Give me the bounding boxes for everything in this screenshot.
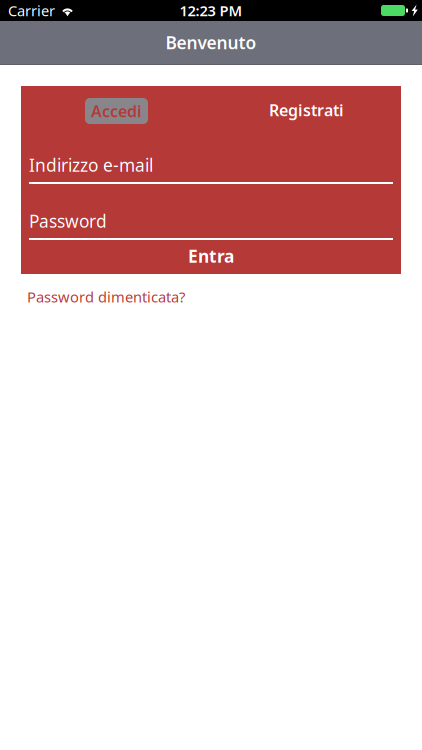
staticText: Benvenuto (165, 31, 256, 54)
staticText: Password dimenticata? (27, 287, 185, 306)
staticText: Accedi (91, 100, 142, 122)
button[interactable]: Entra (29, 245, 393, 267)
button[interactable]: Accedi (85, 98, 148, 124)
staticText: Entra (188, 244, 234, 267)
button[interactable]: Indirizzo e-mail (29, 156, 393, 184)
staticText: Registrati (269, 99, 344, 121)
button[interactable]: Registrati (269, 99, 344, 123)
staticText: Indirizzo e-mail (29, 153, 153, 176)
staticText: Carrier (8, 1, 55, 20)
staticText: 12:23 PM (179, 1, 242, 20)
button[interactable]: Password dimenticata? (27, 287, 185, 306)
staticText: Password (29, 209, 107, 232)
button[interactable]: Password (29, 212, 393, 240)
